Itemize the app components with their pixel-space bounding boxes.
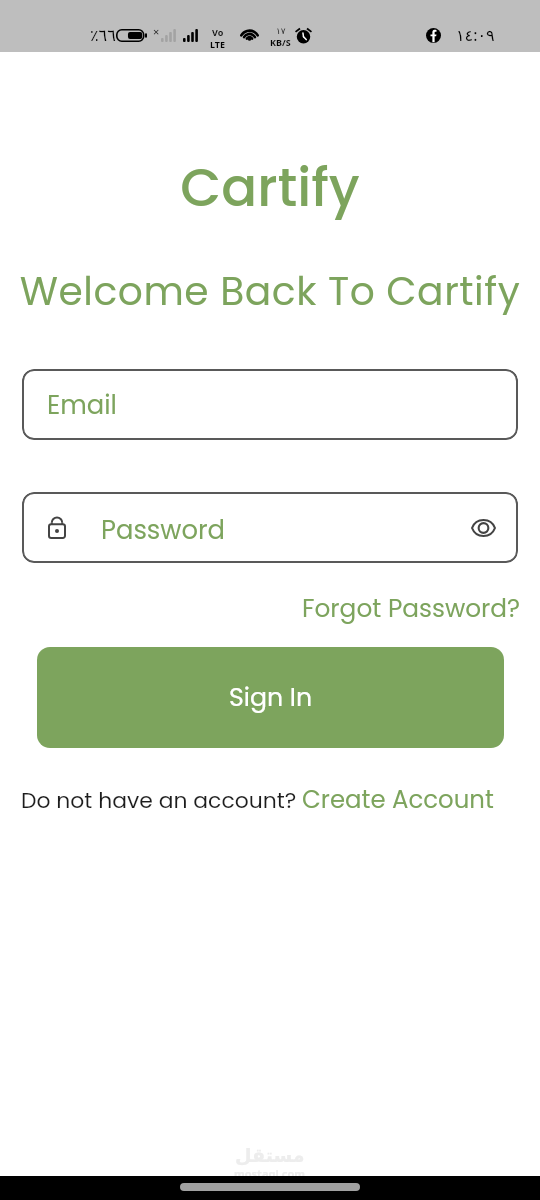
staticText: Cartify	[0, 150, 540, 224]
staticText: ٪٦٦	[90, 26, 116, 45]
staticText: Create Account	[302, 782, 494, 816]
staticText: Password	[101, 512, 226, 548]
staticText: ١٧	[276, 26, 286, 36]
staticText: KB/S	[270, 36, 291, 48]
staticText: ×	[153, 24, 160, 39]
staticText: Vo	[212, 26, 224, 38]
staticText: Forgot Password?	[302, 591, 521, 626]
staticText: ١٤:٠٩	[456, 24, 495, 46]
button[interactable]: Create Account	[302, 782, 494, 816]
staticText: Do not have an account?	[21, 785, 297, 816]
button[interactable]: Forgot Password?	[302, 591, 521, 626]
button[interactable]: Email	[22, 369, 518, 440]
staticText: مستقل	[235, 1144, 305, 1166]
button[interactable]: Show password	[463, 507, 504, 548]
staticText: Sign In	[229, 680, 313, 715]
staticText: mostaql.com	[234, 1166, 306, 1181]
staticText: Email	[47, 387, 117, 423]
staticText: LTE	[210, 38, 226, 50]
button[interactable]: Password	[22, 492, 518, 563]
button[interactable]: Sign In	[37, 647, 504, 748]
staticText: Welcome Back To Cartify	[0, 264, 540, 319]
